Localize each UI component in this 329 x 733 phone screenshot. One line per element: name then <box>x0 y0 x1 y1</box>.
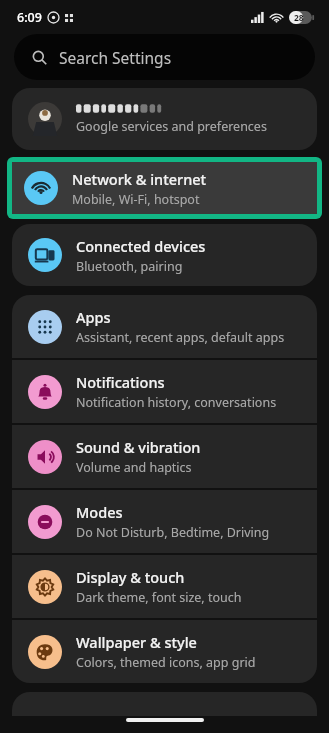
button[interactable]: Search Settings <box>14 34 315 80</box>
button[interactable]: Apps <box>12 295 317 358</box>
staticText: Search Settings <box>59 47 172 68</box>
button[interactable]: Modes <box>12 490 317 553</box>
button[interactable]: Connected devices <box>12 224 317 286</box>
button[interactable]: Sound and vibration <box>12 425 317 488</box>
button[interactable]: Wallpaper and style <box>12 620 317 683</box>
staticText: Do Not Disturb, Bedtime, Driving <box>76 524 270 541</box>
staticText: Mobile, Wi-Fi, hotspot <box>72 191 200 208</box>
staticText: 28 <box>294 12 304 24</box>
other: Display and touch <box>28 570 62 604</box>
other: Apps <box>28 310 62 344</box>
other: Wallpaper and style <box>28 635 62 669</box>
staticText: 6:09 <box>17 9 42 26</box>
staticText: Sound & vibration <box>76 437 201 457</box>
staticText: Colors, themed icons, app grid <box>76 654 256 671</box>
staticText: Modes <box>76 502 123 522</box>
button[interactable]: Network and internet <box>7 157 322 219</box>
staticText: Connected devices <box>76 236 206 256</box>
staticText: Assistant, recent apps, default apps <box>76 329 285 346</box>
staticText: Wallpaper & style <box>76 632 197 652</box>
button[interactable]: Google services and preferences <box>12 88 317 150</box>
other: Modes <box>28 505 62 539</box>
staticText: Volume and haptics <box>76 459 192 476</box>
staticText: Dark theme, font size, touch <box>76 589 242 606</box>
other: Network and internet <box>24 171 58 205</box>
staticText: Network & internet <box>72 169 207 189</box>
staticText: Display & touch <box>76 567 185 587</box>
button[interactable]: Notifications <box>12 360 317 423</box>
other: Sound and vibration <box>28 440 62 474</box>
other: Connected devices <box>28 238 62 272</box>
staticText: Notifications <box>76 372 165 392</box>
other: Notifications <box>28 375 62 409</box>
staticText: Apps <box>76 307 111 327</box>
staticText: Google services and preferences <box>76 118 267 135</box>
staticText: Bluetooth, pairing <box>76 258 183 275</box>
button[interactable]: Display and touch <box>12 555 317 618</box>
staticText: Notification history, conversations <box>76 394 277 411</box>
